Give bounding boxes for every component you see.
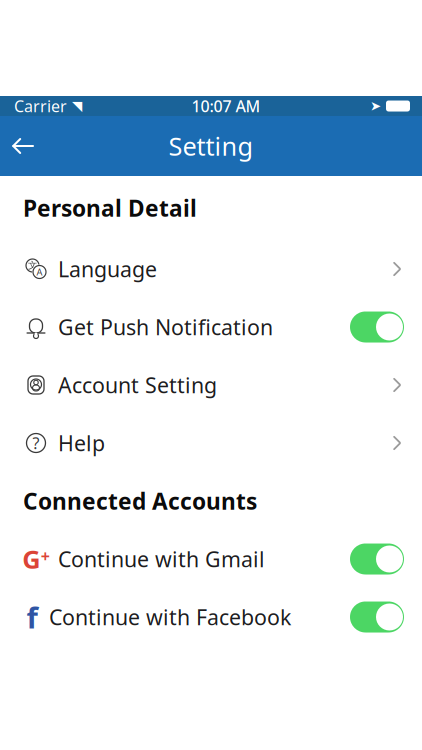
staticText: ◥ <box>72 98 82 113</box>
staticText: ➤ <box>370 98 381 113</box>
staticText: Carrier <box>14 95 67 117</box>
staticText: Connected Accounts <box>23 486 257 516</box>
staticText: Account Setting <box>58 371 217 399</box>
staticText: Continue with Gmail <box>58 545 265 573</box>
button[interactable]: ? <box>0 414 422 472</box>
staticText: Help <box>58 429 105 457</box>
staticText: f <box>26 597 37 636</box>
staticText: G <box>22 542 40 576</box>
button[interactable]: G <box>0 530 422 588</box>
staticText: 文 <box>28 260 37 271</box>
staticText: Personal Detail <box>23 193 197 223</box>
button[interactable]: 文 <box>0 240 422 298</box>
staticText: Get Push Notification <box>58 313 273 341</box>
staticText: Language <box>58 255 157 283</box>
staticText: Continue with Facebook <box>49 603 291 631</box>
button[interactable]: Account Setting <box>0 356 422 414</box>
staticText: + <box>41 545 50 567</box>
button[interactable]: Back <box>0 116 46 176</box>
staticText: A <box>36 266 42 278</box>
staticText: Setting <box>168 129 253 163</box>
staticText: 10:07 AM <box>191 95 260 117</box>
button[interactable]: f <box>0 588 422 646</box>
button[interactable]: Get Push Notification <box>0 298 422 356</box>
staticText: ? <box>32 432 39 454</box>
